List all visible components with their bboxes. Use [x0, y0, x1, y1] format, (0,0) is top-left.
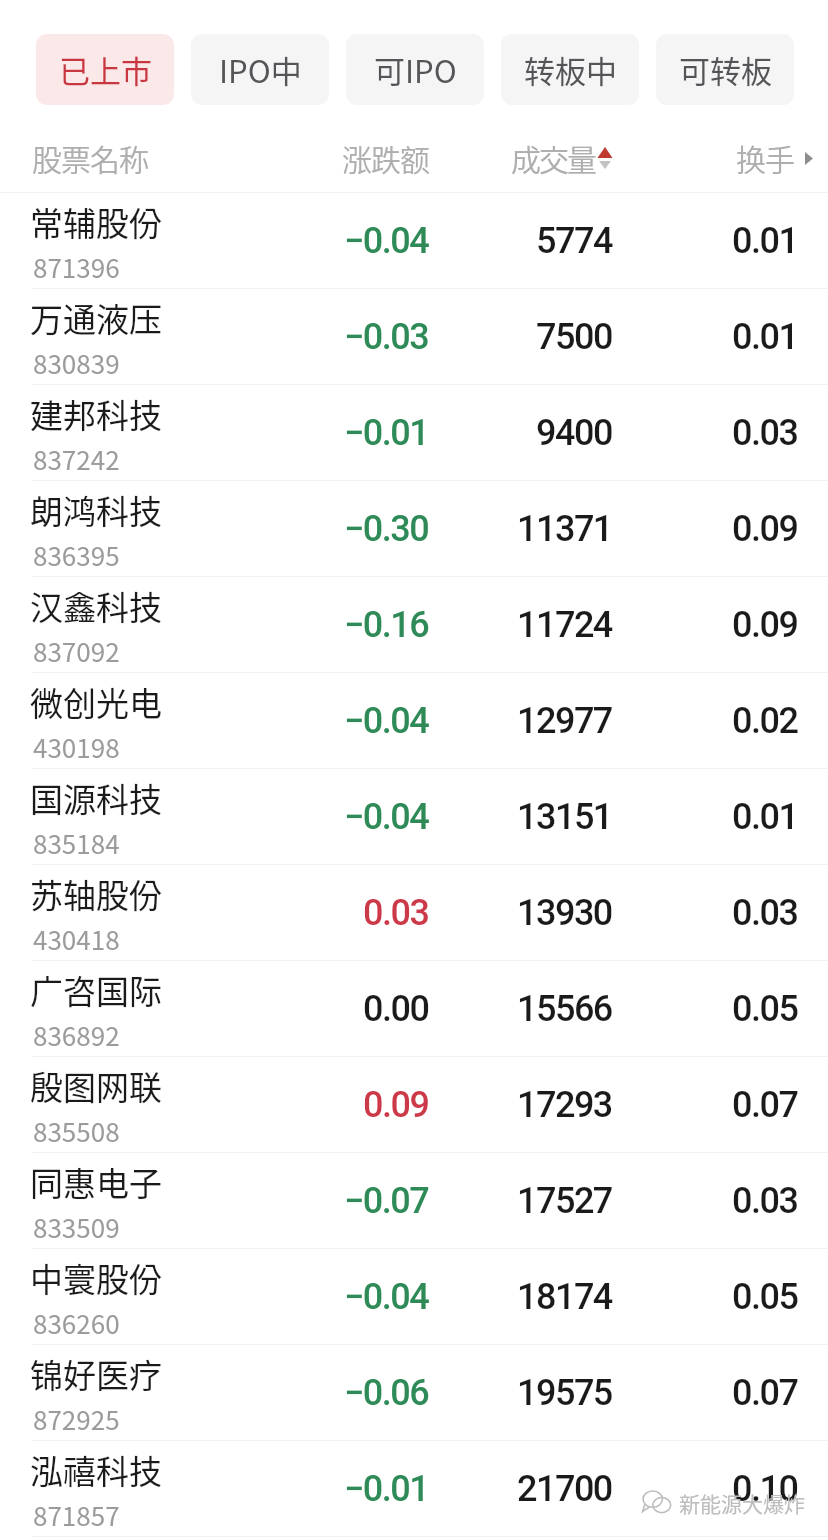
- staticText: 430418: [33, 920, 120, 958]
- staticText: 转板中: [524, 47, 617, 92]
- staticText: 殷图网联: [30, 1062, 162, 1110]
- button[interactable]: 泓禧科技: [0, 1441, 828, 1537]
- staticText: 835508: [33, 1112, 120, 1150]
- staticText: 0.00: [363, 988, 429, 1030]
- button[interactable]: 国源科技: [0, 769, 828, 865]
- staticText: 股票名称: [32, 136, 148, 179]
- staticText: 836395: [33, 536, 120, 574]
- staticText: 13930: [517, 892, 612, 934]
- staticText: 国源科技: [30, 774, 162, 822]
- button[interactable]: 殷图网联: [0, 1057, 828, 1153]
- staticText: 19575: [517, 1372, 612, 1414]
- button[interactable]: 可转板: [656, 34, 794, 105]
- button[interactable]: 广咨国际: [0, 961, 828, 1057]
- staticText: 15566: [517, 988, 612, 1030]
- button[interactable]: 已上市: [36, 34, 174, 105]
- staticText: 17293: [517, 1084, 612, 1126]
- staticText: −0.16: [344, 604, 429, 646]
- staticText: 17527: [517, 1180, 612, 1222]
- staticText: 常辅股份: [30, 198, 162, 246]
- staticText: 7500: [536, 316, 612, 358]
- staticText: IPO中: [219, 47, 302, 92]
- staticText: 朗鸿科技: [30, 486, 162, 534]
- staticText: 0.05: [732, 988, 798, 1030]
- button[interactable]: 微创光电: [0, 673, 828, 769]
- button[interactable]: 汉鑫科技: [0, 577, 828, 673]
- staticText: −0.01: [344, 412, 429, 454]
- staticText: 0.01: [732, 316, 798, 358]
- staticText: 11724: [517, 604, 612, 646]
- staticText: −0.30: [344, 508, 429, 550]
- staticText: 中寰股份: [30, 1254, 162, 1302]
- staticText: 汉鑫科技: [30, 582, 162, 630]
- staticText: −0.03: [344, 316, 429, 358]
- staticText: 建邦科技: [30, 390, 162, 438]
- button[interactable]: 锦好医疗: [0, 1345, 828, 1441]
- button[interactable]: 建邦科技: [0, 385, 828, 481]
- staticText: 已上市: [59, 47, 152, 92]
- other: More columns: [805, 152, 813, 165]
- staticText: 837092: [33, 632, 120, 670]
- staticText: 换手: [736, 136, 794, 179]
- staticText: 0.03: [363, 892, 429, 934]
- staticText: −0.01: [344, 1468, 429, 1510]
- button[interactable]: 换手: [514, 105, 794, 193]
- button[interactable]: IPO中: [191, 34, 329, 105]
- staticText: 万通液压: [30, 294, 162, 342]
- staticText: 0.03: [732, 1180, 798, 1222]
- button[interactable]: 股票名称: [32, 105, 828, 193]
- staticText: 锦好医疗: [30, 1350, 162, 1398]
- staticText: 0.09: [732, 508, 798, 550]
- staticText: 0.03: [732, 892, 798, 934]
- staticText: 871396: [33, 248, 120, 286]
- staticText: 21700: [517, 1468, 612, 1510]
- staticText: 13151: [517, 796, 612, 838]
- staticText: 835184: [33, 824, 120, 862]
- staticText: 830839: [33, 344, 120, 382]
- staticText: 0.05: [732, 1276, 798, 1318]
- staticText: 0.09: [732, 604, 798, 646]
- button[interactable]: 转板中: [501, 34, 639, 105]
- staticText: 836892: [33, 1016, 120, 1054]
- staticText: −0.04: [344, 796, 429, 838]
- staticText: 涨跌额: [342, 136, 429, 179]
- button[interactable]: 朗鸿科技: [0, 481, 828, 577]
- staticText: 11371: [517, 508, 612, 550]
- button[interactable]: 成交量: [333, 105, 613, 193]
- staticText: −0.04: [344, 220, 429, 262]
- staticText: 0.01: [732, 220, 798, 262]
- staticText: 0.07: [732, 1084, 798, 1126]
- staticText: 可转板: [679, 47, 772, 92]
- staticText: 0.10: [732, 1468, 798, 1510]
- button[interactable]: 常辅股份: [0, 193, 828, 289]
- button[interactable]: 同惠电子: [0, 1153, 828, 1249]
- staticText: 成交量: [511, 136, 595, 179]
- staticText: 泓禧科技: [30, 1446, 162, 1494]
- staticText: 5774: [536, 220, 612, 262]
- staticText: 苏轴股份: [30, 870, 162, 918]
- staticText: 872925: [33, 1400, 120, 1438]
- button[interactable]: 万通液压: [0, 289, 828, 385]
- staticText: 0.03: [732, 412, 798, 454]
- button[interactable]: 中寰股份: [0, 1249, 828, 1345]
- button[interactable]: 苏轴股份: [0, 865, 828, 961]
- staticText: 9400: [536, 412, 612, 454]
- staticText: 837242: [33, 440, 120, 478]
- button[interactable]: 可IPO: [346, 34, 484, 105]
- staticText: 430198: [33, 728, 120, 766]
- staticText: 833509: [33, 1208, 120, 1246]
- staticText: 871857: [33, 1496, 120, 1534]
- staticText: 0.07: [732, 1372, 798, 1414]
- staticText: 微创光电: [30, 678, 162, 726]
- staticText: −0.06: [344, 1372, 429, 1414]
- staticText: −0.04: [344, 1276, 429, 1318]
- staticText: 18174: [517, 1276, 612, 1318]
- staticText: 836260: [33, 1304, 120, 1342]
- staticText: 0.02: [732, 700, 798, 742]
- staticText: 12977: [517, 700, 612, 742]
- staticText: 0.01: [732, 796, 798, 838]
- staticText: 新能源大爆炸: [679, 1488, 805, 1518]
- staticText: 同惠电子: [30, 1158, 162, 1206]
- staticText: −0.04: [344, 700, 429, 742]
- button[interactable]: 涨跌额: [149, 105, 429, 193]
